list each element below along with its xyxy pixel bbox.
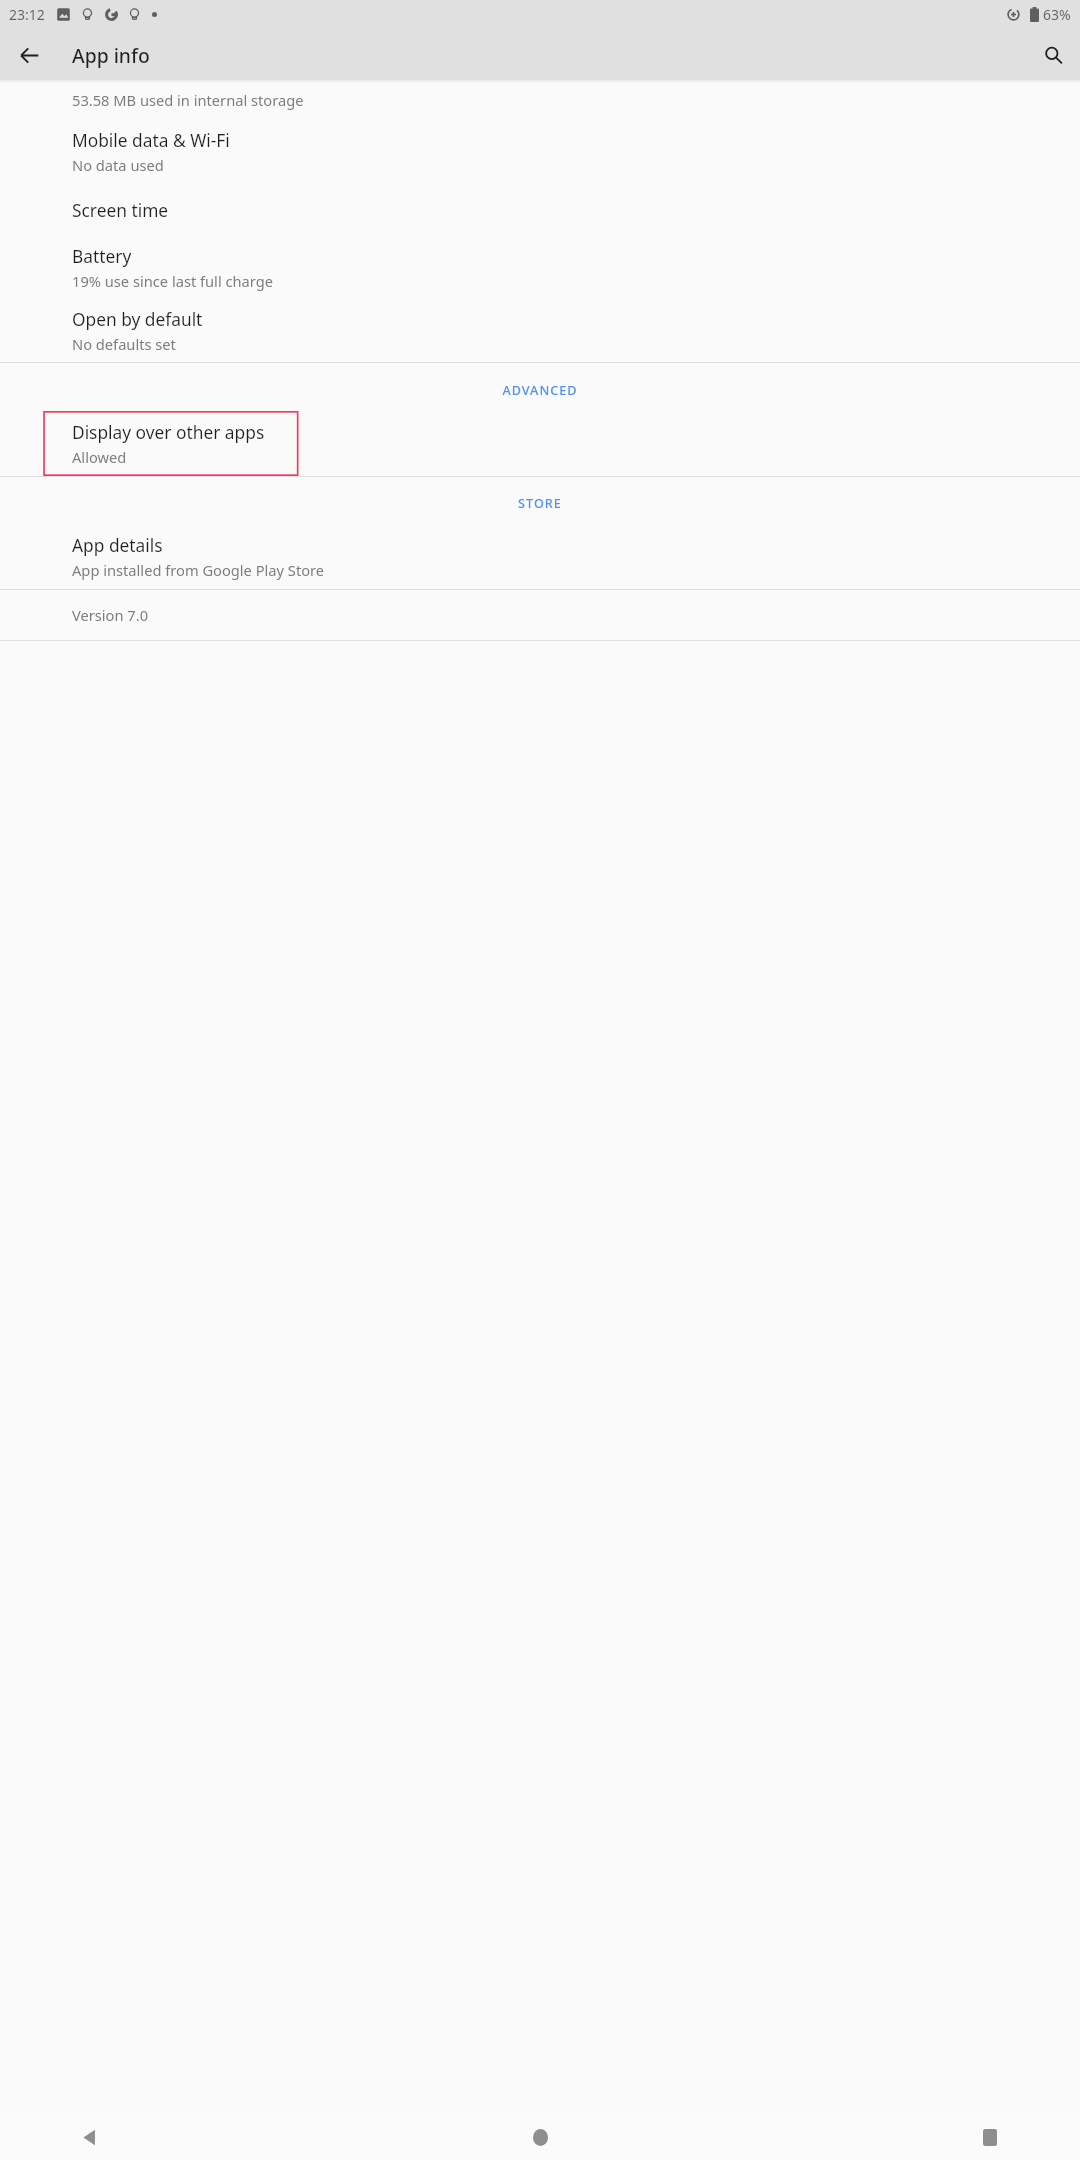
staticText: ADVANCED: [502, 381, 578, 398]
button[interactable]: Display over other apps: [0, 411, 1080, 476]
button[interactable]: Recent apps: [966, 2115, 1014, 2160]
staticText: Screen time: [72, 198, 169, 222]
staticText: Mobile data & Wi-Fi: [72, 128, 230, 152]
button[interactable]: Battery: [0, 236, 1080, 299]
staticText: Allowed: [72, 447, 127, 467]
staticText: Battery: [72, 244, 132, 268]
staticText: App details: [72, 533, 163, 557]
button[interactable]: Navigate up: [5, 31, 53, 79]
staticText: No defaults set: [72, 334, 176, 354]
button[interactable]: 53.58 MB used in internal storage: [0, 83, 1080, 120]
button[interactable]: Open by default: [0, 299, 1080, 362]
button[interactable]: Home: [516, 2115, 564, 2160]
staticText: 23:12: [9, 5, 45, 24]
button[interactable]: Back: [65, 2115, 113, 2160]
button[interactable]: Search: [1029, 31, 1077, 79]
button[interactable]: Screen time: [0, 183, 1080, 236]
staticText: Version 7.0: [72, 605, 149, 625]
staticText: App info: [72, 42, 150, 68]
staticText: 63%: [1043, 5, 1071, 24]
staticText: 19% use since last full charge: [72, 271, 273, 291]
button[interactable]: Mobile data & Wi-Fi: [0, 120, 1080, 183]
button[interactable]: App details: [0, 524, 1080, 589]
staticText: No data used: [72, 155, 164, 175]
staticText: Open by default: [72, 307, 203, 331]
staticText: App installed from Google Play Store: [72, 560, 325, 580]
staticText: Display over other apps: [72, 420, 265, 444]
staticText: 53.58 MB used in internal storage: [72, 90, 304, 110]
staticText: STORE: [518, 494, 562, 511]
